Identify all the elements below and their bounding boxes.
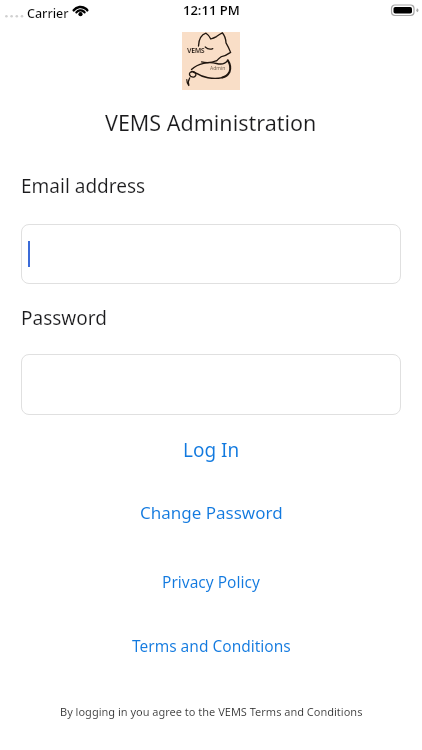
staticText: Password — [21, 305, 107, 331]
staticText: 12:11 PM — [183, 1, 240, 19]
button[interactable]: Log In — [177, 437, 246, 463]
staticText: Privacy Policy — [162, 571, 260, 592]
button[interactable]: Terms and Conditions — [126, 635, 297, 656]
staticText: By logging in you agree to the VEMS Term… — [60, 704, 363, 719]
staticText: VEMS Administration — [105, 108, 317, 137]
button[interactable]: Change Password — [134, 501, 289, 524]
staticText: Admin — [210, 65, 226, 72]
button[interactable] — [21, 224, 401, 284]
staticText: Change Password — [140, 501, 283, 524]
staticText: Carrier — [27, 5, 69, 22]
button[interactable] — [21, 354, 401, 415]
staticText: Log In — [183, 437, 240, 463]
button[interactable]: Privacy Policy — [156, 571, 266, 592]
staticText: VEMS — [187, 46, 205, 56]
staticText: Email address — [21, 173, 146, 199]
staticText: Terms and Conditions — [132, 635, 291, 656]
